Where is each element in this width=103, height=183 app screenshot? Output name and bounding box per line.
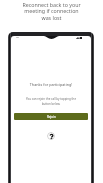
staticText: Reconnect back to your meeting if connec… (0, 1, 103, 22)
staticText: Rejoin (47, 115, 56, 119)
staticText: You can rejoin the call by tapping the b… (11, 97, 91, 106)
button[interactable]: Rejoin (14, 113, 88, 120)
button[interactable]: Help (47, 132, 55, 140)
staticText: Thanks for participating! (11, 82, 91, 87)
